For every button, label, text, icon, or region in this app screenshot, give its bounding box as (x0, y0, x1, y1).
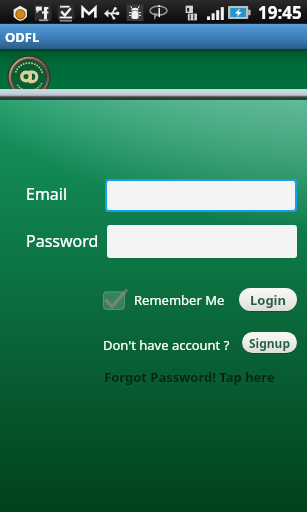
button[interactable]: Password (107, 225, 297, 258)
other: Remember Me (103, 289, 127, 311)
staticText: ODFL (5, 28, 40, 46)
staticText: 19:45 (258, 1, 302, 24)
button[interactable]: Email (107, 181, 295, 210)
staticText: Don't have account ? (103, 336, 230, 354)
staticText: Remember Me (134, 291, 225, 309)
button[interactable]: Forgot Password! Tap here (104, 368, 275, 386)
staticText: Password (26, 230, 99, 252)
button[interactable]: Remember Me (103, 289, 225, 311)
button[interactable]: Signup (242, 332, 297, 353)
staticText: Login (250, 291, 286, 309)
button[interactable]: Login (239, 288, 297, 311)
staticText: Signup (249, 335, 290, 351)
staticText: Email (26, 183, 68, 205)
other: Old Dominion Freight Line logo (8, 56, 50, 98)
